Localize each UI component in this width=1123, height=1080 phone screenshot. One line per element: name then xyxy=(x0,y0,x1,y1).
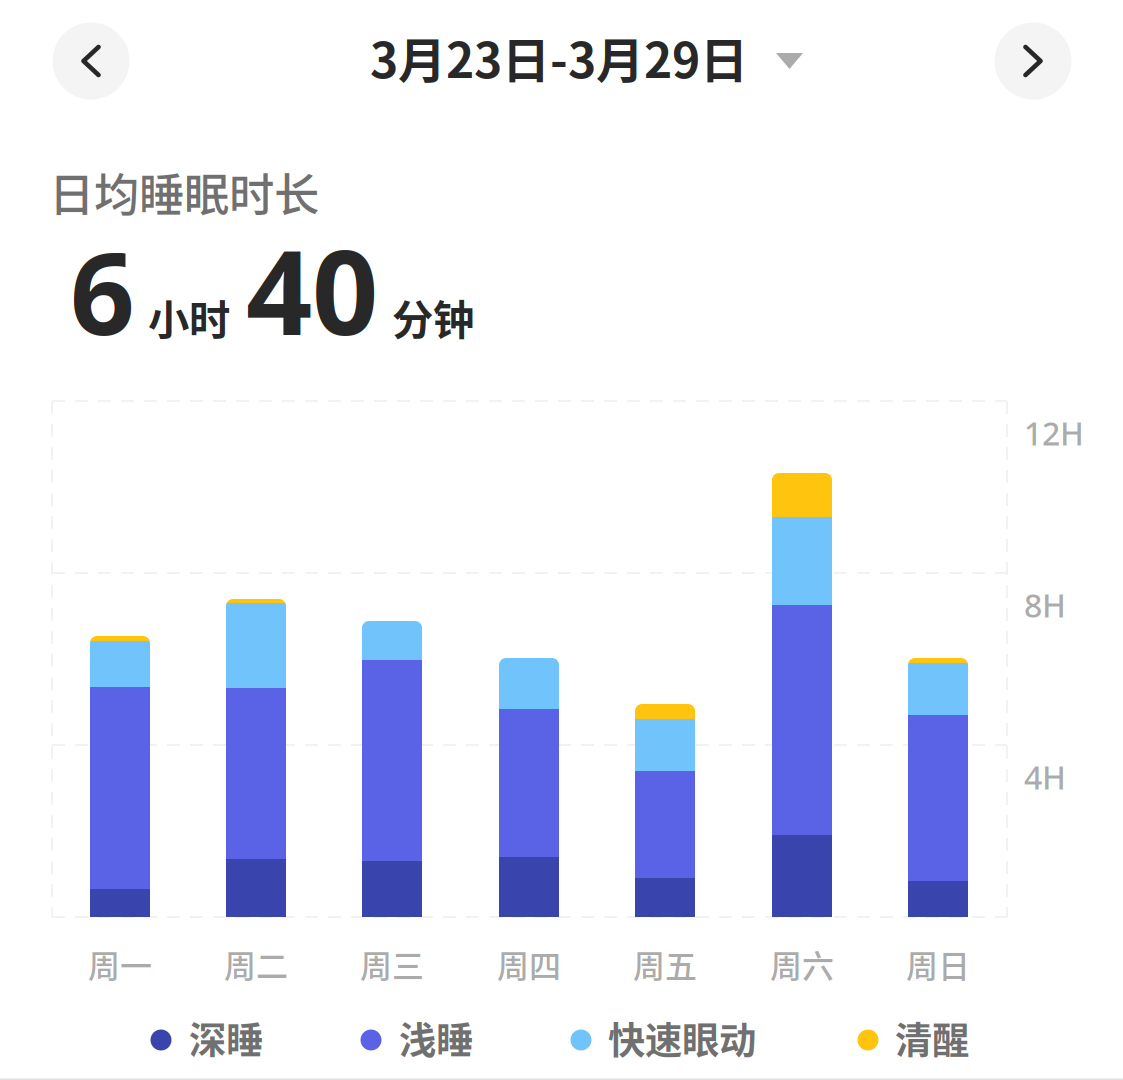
staticText: 周日 xyxy=(906,941,970,987)
staticText: 12H xyxy=(1024,412,1084,454)
staticText: 周五 xyxy=(633,941,697,987)
staticText: 深睡 xyxy=(189,1011,263,1065)
staticText: 4H xyxy=(1024,756,1066,798)
staticText: 分钟 xyxy=(392,287,474,347)
staticText: 6 xyxy=(70,216,135,366)
staticText: 8H xyxy=(1024,584,1066,626)
button[interactable]: 上一周 xyxy=(52,22,129,99)
staticText: 浅睡 xyxy=(399,1011,473,1065)
staticText: 40 xyxy=(246,213,378,367)
staticText: 周六 xyxy=(770,941,834,987)
staticText: 周三 xyxy=(360,941,424,987)
staticText: 周二 xyxy=(224,941,288,987)
staticText: 周四 xyxy=(497,941,561,987)
staticText: 周一 xyxy=(88,941,152,987)
button[interactable]: 下一周 xyxy=(994,22,1071,99)
staticText: 3月23日-3月29日 xyxy=(370,22,748,92)
button[interactable]: 3月23日-3月29日 xyxy=(370,21,806,93)
staticText: 清醒 xyxy=(895,1011,969,1065)
staticText: 小时 xyxy=(148,287,230,347)
staticText: 日均睡眠时长 xyxy=(49,159,319,225)
staticText: 快速眼动 xyxy=(608,1011,756,1065)
